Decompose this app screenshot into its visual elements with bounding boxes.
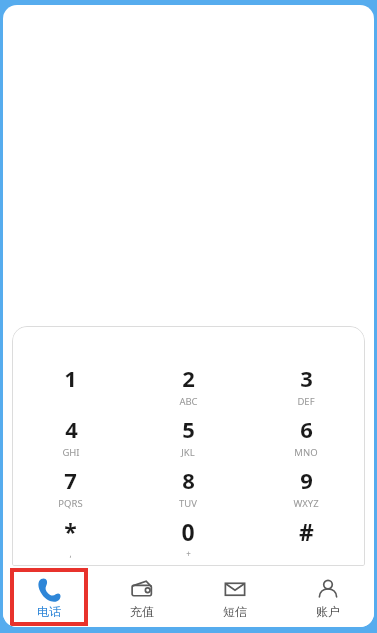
staticText: 9 bbox=[300, 465, 313, 495]
staticText: 短信 bbox=[223, 604, 247, 619]
staticText: MNO bbox=[294, 446, 318, 459]
staticText: 3 bbox=[300, 363, 313, 393]
button[interactable]: * bbox=[12, 516, 129, 566]
button[interactable]: 8 bbox=[129, 465, 247, 516]
button[interactable]: 9 bbox=[247, 465, 365, 516]
staticText: 2 bbox=[182, 363, 195, 393]
button[interactable]: 2 bbox=[129, 363, 247, 414]
staticText: 0 bbox=[181, 516, 195, 547]
staticText: DEF bbox=[297, 395, 315, 408]
button[interactable]: 短信 bbox=[188, 567, 281, 627]
staticText: 7 bbox=[64, 465, 77, 495]
staticText: JKL bbox=[181, 446, 195, 459]
button[interactable]: 5 bbox=[129, 414, 247, 465]
staticText: 电话 bbox=[37, 604, 61, 619]
staticText: * bbox=[64, 516, 77, 547]
staticText: # bbox=[299, 516, 314, 547]
staticText: ABC bbox=[179, 395, 198, 408]
staticText: 5 bbox=[182, 414, 195, 444]
staticText: 4 bbox=[65, 414, 78, 444]
button[interactable]: 4 bbox=[12, 414, 129, 465]
button[interactable]: # bbox=[247, 516, 365, 566]
button[interactable]: 0 bbox=[129, 516, 247, 566]
staticText: 账户 bbox=[316, 604, 340, 619]
button[interactable]: 1 bbox=[12, 363, 129, 414]
staticText: 1 bbox=[64, 363, 77, 393]
staticText: 8 bbox=[182, 465, 195, 495]
button[interactable]: 7 bbox=[12, 465, 129, 516]
button[interactable]: 充值 bbox=[95, 567, 188, 627]
button[interactable]: 账户 bbox=[281, 567, 374, 627]
button[interactable]: 3 bbox=[247, 363, 365, 414]
staticText: GHI bbox=[62, 446, 80, 459]
button[interactable]: 电话 bbox=[3, 567, 95, 627]
staticText: + bbox=[186, 548, 191, 559]
staticText: WXYZ bbox=[293, 497, 319, 510]
staticText: 充值 bbox=[130, 604, 154, 619]
button[interactable]: 6 bbox=[247, 414, 365, 465]
staticText: PQRS bbox=[58, 497, 83, 510]
staticText: 6 bbox=[300, 414, 313, 444]
staticText: , bbox=[69, 548, 72, 559]
staticText: TUV bbox=[179, 497, 197, 510]
